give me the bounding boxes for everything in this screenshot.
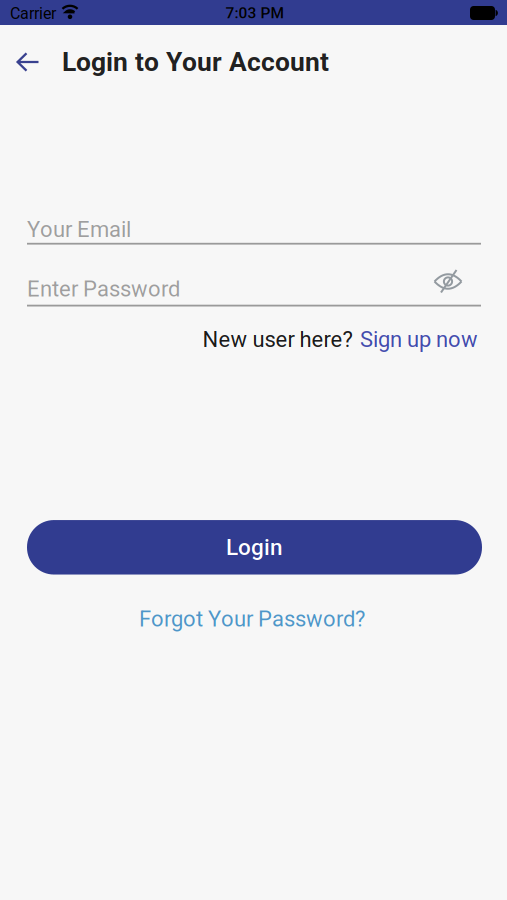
button[interactable]: Login	[27, 520, 482, 574]
staticText: Login to Your Account	[62, 46, 329, 77]
button[interactable]: Forgot Your Password?	[139, 606, 365, 632]
staticText: Your Email	[27, 217, 131, 242]
staticText: Forgot Your Password?	[139, 606, 365, 632]
staticText: Sign up now	[360, 327, 478, 352]
staticText: Carrier	[10, 4, 56, 23]
button[interactable]	[426, 259, 470, 303]
staticText: New user here?	[202, 327, 357, 352]
staticText: Login	[226, 534, 283, 560]
staticText: 7:03 PM	[225, 4, 284, 22]
staticText: Enter Password	[27, 276, 180, 302]
button[interactable]	[6, 40, 50, 84]
button[interactable]: Sign up now	[360, 327, 478, 352]
